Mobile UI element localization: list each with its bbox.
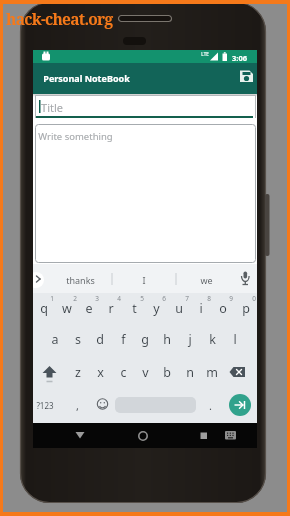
button[interactable]: g [134,329,156,349]
button[interactable]: j [179,329,201,349]
button[interactable] [229,394,251,416]
staticText: d [96,331,104,348]
staticText: z [75,364,81,381]
staticText: f [121,331,126,348]
staticText: n [186,364,194,381]
staticText: , [76,398,79,413]
staticText: t [132,300,137,317]
staticText: a [51,331,59,348]
staticText: 3 [95,294,99,303]
staticText: b [163,364,171,381]
button[interactable] [229,366,249,388]
staticText: 8 [207,294,211,303]
staticText: q [40,300,48,317]
staticText: LTE [201,51,209,57]
button[interactable]: q [33,298,55,318]
staticText: I [142,274,146,286]
staticText: h [163,331,171,348]
staticText: 2 [73,294,77,303]
staticText: ?123 [36,400,54,411]
button[interactable]: y [145,298,167,318]
staticText: Personal NoteBook [43,72,130,84]
button[interactable] [238,67,255,84]
button[interactable]: thanks [60,272,100,288]
button[interactable]: s [67,329,89,349]
staticText: 7 [185,294,189,303]
button[interactable]: t [123,298,145,318]
button[interactable]: l [224,329,246,349]
staticText: y [153,300,160,317]
button[interactable]: ?123 [34,395,56,415]
staticText: c [120,364,127,381]
staticText: j [188,331,192,348]
staticText: 4 [117,294,121,303]
staticText: 0 [252,294,256,303]
button[interactable]: v [134,362,156,382]
staticText: g [141,331,149,348]
button[interactable]: x [89,362,111,382]
button[interactable]: z [67,362,89,382]
button[interactable] [224,429,237,441]
button[interactable]: . [199,395,221,415]
button[interactable]: , [66,395,88,415]
button[interactable] [35,95,256,118]
button[interactable] [192,428,209,443]
staticText: 6 [162,294,166,303]
button[interactable]: d [89,329,111,349]
button[interactable]: c [112,362,134,382]
button[interactable]: u [168,298,190,318]
button[interactable]: b [156,362,178,382]
staticText: k [209,331,216,348]
staticText: r [108,300,114,317]
button[interactable]: i [190,298,212,318]
staticText: x [97,364,104,381]
staticText: i [199,300,203,317]
staticText: o [219,300,227,317]
staticText: m [206,364,218,381]
button[interactable]: w [56,298,78,318]
button[interactable]: r [100,298,122,318]
button[interactable] [71,428,89,443]
button[interactable]: h [156,329,178,349]
staticText: hack-cheat.org [6,8,113,29]
button[interactable]: o [212,298,234,318]
staticText: Write something [38,130,113,143]
staticText: 5 [140,294,144,303]
button[interactable]: we [191,272,221,288]
staticText: . [209,398,212,413]
button[interactable]: a [44,329,66,349]
button[interactable]: f [112,329,134,349]
button[interactable] [35,124,256,263]
staticText: thanks [66,274,95,286]
button[interactable] [96,398,109,411]
staticText: 1 [50,294,54,303]
staticText: 9 [229,294,233,303]
staticText: 3:06 [232,53,247,63]
staticText: v [142,364,149,381]
button[interactable]: m [201,362,223,382]
staticText: w [62,300,72,317]
button[interactable] [39,363,60,389]
staticText: Title [41,100,63,114]
button[interactable]: I [129,272,159,288]
staticText: s [75,331,81,348]
staticText: p [242,300,250,317]
button[interactable] [33,272,44,288]
staticText: e [85,300,93,317]
staticText: l [233,331,237,348]
button[interactable]: n [179,362,201,382]
staticText: we [200,274,213,286]
button[interactable]: p [235,298,257,318]
button[interactable]: e [78,298,100,318]
staticText: u [175,300,183,317]
button[interactable] [134,428,152,443]
button[interactable]: k [201,329,223,349]
